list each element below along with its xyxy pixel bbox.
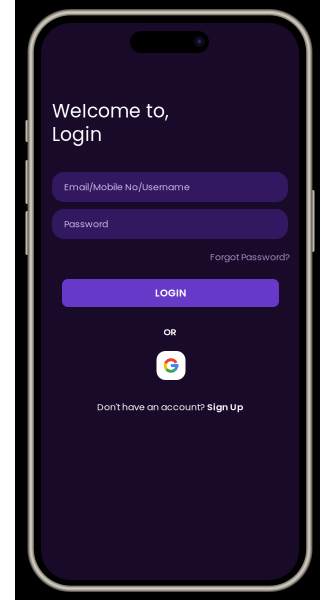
staticText: Don't have an account? [97,400,207,414]
staticText: Sign Up [207,400,243,414]
staticText: Email/Mobile No/Username [64,180,190,194]
staticText: OR [163,325,176,339]
staticText: Password [64,217,108,231]
staticText: Welcome to, [52,98,169,124]
button[interactable]: LOGIN [62,279,279,307]
staticText: LOGIN [155,286,186,300]
button[interactable]: Sign in with Google [156,351,185,380]
button[interactable]: Forgot Password? [52,251,290,263]
staticText: Forgot Password? [210,250,290,264]
button[interactable]: Don't have an account? [52,401,288,413]
staticText: Login [52,121,102,148]
